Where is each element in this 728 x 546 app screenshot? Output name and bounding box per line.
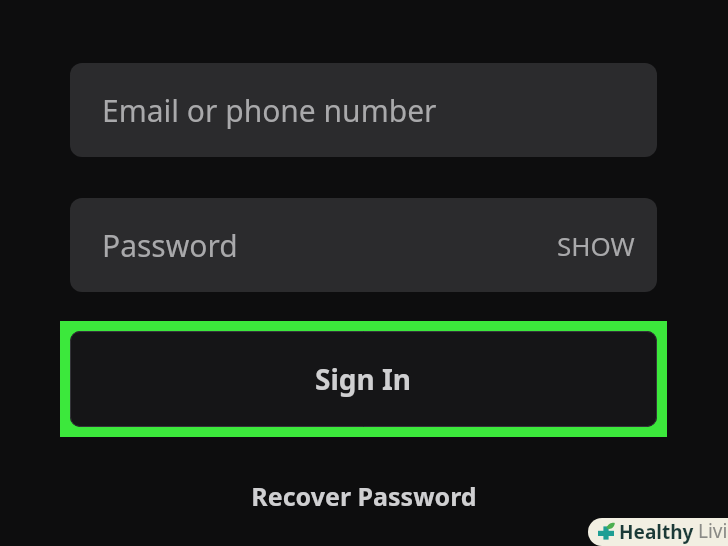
button[interactable]: Email or phone number [70, 63, 657, 157]
staticText: SHOW [557, 228, 635, 263]
button[interactable]: SHOW [545, 220, 647, 271]
staticText: Recover Password [251, 479, 477, 513]
staticText: Password [102, 225, 238, 266]
staticText: Email or phone number [102, 90, 437, 131]
button[interactable]: Password [70, 198, 657, 292]
staticText: Sign In [315, 360, 412, 398]
staticText: Living [698, 518, 728, 546]
button[interactable]: Sign In [70, 331, 657, 427]
staticText: Healthy [619, 519, 694, 545]
button[interactable]: Recover Password [237, 475, 491, 517]
